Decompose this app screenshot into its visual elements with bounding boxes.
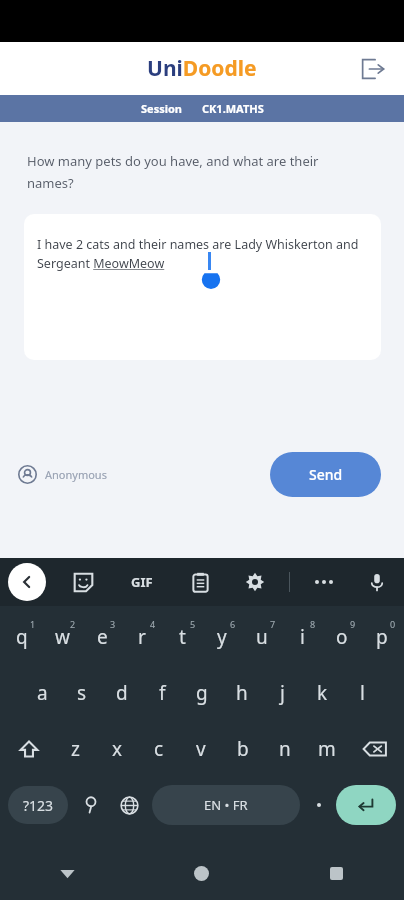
button[interactable]: h <box>222 670 262 716</box>
staticText: 2 <box>70 618 76 630</box>
button[interactable]: Anonymous <box>18 465 107 484</box>
staticText: 7 <box>270 618 276 630</box>
staticText: w <box>55 624 70 650</box>
staticText: b <box>237 736 249 762</box>
button[interactable]: Shift <box>2 726 55 772</box>
button[interactable]: f <box>142 670 182 716</box>
staticText: 3 <box>110 618 116 630</box>
staticText: h <box>236 680 248 706</box>
button[interactable]: Voice input <box>360 565 394 599</box>
button[interactable]: Change language <box>112 785 146 825</box>
button[interactable]: r <box>122 614 162 660</box>
button[interactable]: Log out <box>352 49 392 89</box>
button[interactable]: p <box>362 614 402 660</box>
button[interactable]: m <box>306 726 348 772</box>
button[interactable]: i <box>282 614 322 660</box>
button[interactable]: Session <box>0 95 404 122</box>
staticText: EN • FR <box>204 796 248 814</box>
staticText: UniDoodle <box>147 54 257 83</box>
button[interactable]: EN • FR <box>152 785 300 825</box>
staticText: d <box>116 680 128 706</box>
staticText: l <box>360 680 365 706</box>
staticText: Anonymous <box>45 467 107 482</box>
staticText: m <box>318 736 336 762</box>
button[interactable]: Settings <box>238 565 272 599</box>
staticText: e <box>97 624 108 650</box>
staticText: Send <box>309 465 343 484</box>
button[interactable]: Enter <box>336 785 396 825</box>
button[interactable]: Home <box>134 846 269 900</box>
button[interactable]: Back <box>8 563 46 601</box>
staticText: 8 <box>310 618 316 630</box>
button[interactable]: I have 2 cats and their names are Lady W… <box>24 214 381 360</box>
button[interactable]: u <box>242 614 282 660</box>
button[interactable]: ?123 <box>8 786 68 824</box>
button[interactable]: Stickers <box>66 565 100 599</box>
staticText: g <box>196 680 208 706</box>
staticText: u <box>256 624 268 650</box>
button[interactable]: s <box>62 670 102 716</box>
button[interactable]: x <box>96 726 138 772</box>
button[interactable]: v <box>180 726 222 772</box>
staticText: j <box>280 680 285 706</box>
button[interactable]: z <box>55 726 96 772</box>
staticText: ?123 <box>23 796 54 815</box>
button[interactable]: b <box>222 726 264 772</box>
staticText: 1 <box>30 618 36 630</box>
staticText: n <box>279 736 291 762</box>
staticText: 5 <box>190 618 196 630</box>
staticText: k <box>317 680 328 706</box>
button[interactable]: GIF <box>122 562 162 602</box>
button[interactable]: q <box>2 614 42 660</box>
button[interactable]: w <box>42 614 82 660</box>
button[interactable]: e <box>82 614 122 660</box>
button[interactable]: Backspace <box>348 726 402 772</box>
staticText: z <box>71 736 80 762</box>
staticText: v <box>196 736 206 762</box>
button[interactable]: Hide keyboard <box>0 846 134 900</box>
button[interactable]: More options <box>307 565 341 599</box>
button[interactable]: a <box>22 670 62 716</box>
staticText: 6 <box>230 618 236 630</box>
staticText: i <box>300 624 305 650</box>
button[interactable] <box>306 785 332 825</box>
staticText: I have 2 cats and their names are Lady W… <box>37 236 367 272</box>
staticText: GIF <box>131 573 153 591</box>
button[interactable]: Send <box>270 452 381 497</box>
button[interactable]: n <box>264 726 306 772</box>
button[interactable]: k <box>302 670 342 716</box>
staticText: r <box>138 624 146 650</box>
button[interactable]: j <box>262 670 302 716</box>
staticText: Session <box>141 101 182 116</box>
staticText: 4 <box>150 618 156 630</box>
staticText: 0 <box>390 618 396 630</box>
staticText: How many pets do you have, and what are … <box>27 152 364 192</box>
staticText: a <box>37 680 48 706</box>
staticText: f <box>159 680 166 706</box>
button[interactable]: Emoji and comma <box>74 785 108 825</box>
button[interactable]: l <box>342 670 382 716</box>
staticText: q <box>16 624 28 650</box>
button[interactable]: d <box>102 670 142 716</box>
button[interactable]: t <box>162 614 202 660</box>
staticText: o <box>336 624 348 650</box>
button[interactable]: c <box>138 726 180 772</box>
staticText: t <box>179 624 186 650</box>
button[interactable]: y <box>202 614 242 660</box>
staticText: CK1.MATHS <box>202 101 264 116</box>
button[interactable]: g <box>182 670 222 716</box>
staticText: y <box>217 624 227 650</box>
button[interactable]: Recent apps <box>269 846 404 900</box>
staticText: x <box>112 736 123 762</box>
button[interactable]: Clipboard <box>183 565 217 599</box>
staticText: p <box>376 624 388 650</box>
staticText: s <box>77 680 87 706</box>
button[interactable]: o <box>322 614 362 660</box>
staticText: 9 <box>350 618 356 630</box>
staticText: c <box>154 736 164 762</box>
